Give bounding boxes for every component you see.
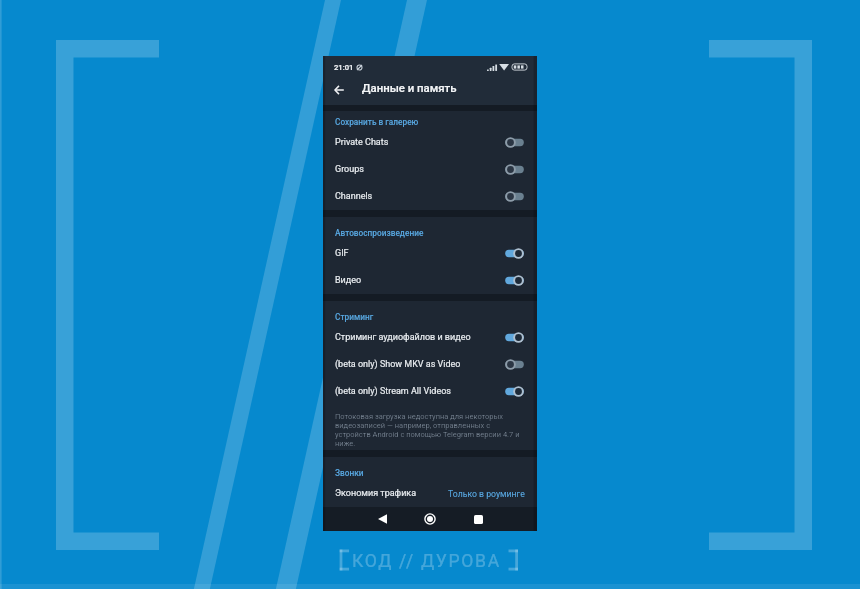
staticText: (beta only) Show MKV as Video xyxy=(335,359,461,370)
staticText: Данные и память xyxy=(362,81,457,94)
button[interactable]: Private Chats xyxy=(323,129,537,156)
button[interactable]: (beta only) Show MKV as Video xyxy=(323,351,537,378)
staticText: Groups xyxy=(335,164,364,175)
staticText: Стриминг аудиофайлов и видео xyxy=(335,332,471,343)
button[interactable]: Back xyxy=(329,80,348,99)
staticText: Сохранить в галерею xyxy=(335,117,419,127)
button[interactable]: Видео xyxy=(323,267,537,294)
staticText: GIF xyxy=(335,248,349,259)
staticText: Видео xyxy=(335,275,362,286)
staticText: Звонки xyxy=(335,468,364,478)
staticText: Channels xyxy=(335,191,373,202)
button[interactable]: Стриминг аудиофайлов и видео xyxy=(323,324,537,351)
staticText: Private Chats xyxy=(335,137,389,148)
button[interactable]: Groups xyxy=(323,156,537,183)
button[interactable]: (beta only) Stream All Videos xyxy=(323,378,537,405)
staticText: 21:01 xyxy=(334,63,354,72)
button[interactable]: Back xyxy=(370,507,394,531)
button[interactable]: Home xyxy=(418,507,442,531)
button[interactable]: Recent apps xyxy=(466,507,490,531)
staticText: (beta only) Stream All Videos xyxy=(335,386,451,397)
staticText: Потоковая загрузка недоступна для некото… xyxy=(335,412,522,448)
staticText: Только в роуминге xyxy=(448,489,525,499)
button[interactable]: Channels xyxy=(323,183,537,210)
button[interactable]: GIF xyxy=(323,240,537,267)
button[interactable]: Экономия трафика xyxy=(323,480,537,507)
staticText: Автовоспроизведение xyxy=(335,228,424,238)
staticText: Стриминг xyxy=(335,312,374,322)
staticText: КОД // ДУРОВА xyxy=(352,551,501,572)
staticText: Экономия трафика xyxy=(335,488,417,499)
